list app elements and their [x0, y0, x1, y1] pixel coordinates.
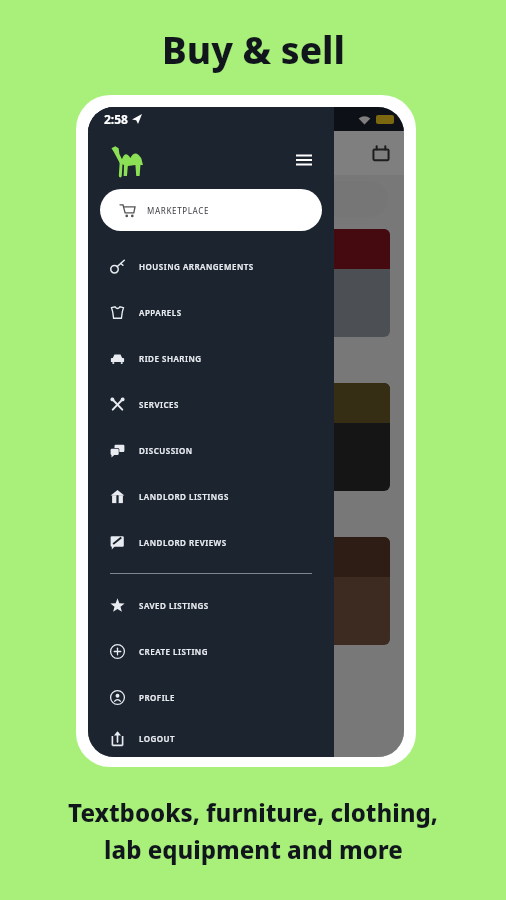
staticText: View more	[102, 359, 147, 371]
staticText: MARKETPLACE	[147, 205, 210, 216]
staticText: Furniture	[102, 496, 146, 510]
staticText: HOUSING ARRANGEMENTS	[139, 261, 254, 272]
staticText: Books	[102, 650, 131, 664]
staticText: LANDLORD REVIEWS	[139, 537, 227, 548]
staticText: SAVED LISTINGS	[139, 600, 209, 611]
button[interactable]: LOGOUT	[88, 720, 334, 757]
button[interactable]: MARKETPLACE	[100, 189, 322, 231]
staticText: LANDLORD LISTINGS	[139, 491, 229, 502]
button[interactable]: RIDE SHARING	[88, 335, 334, 381]
staticText: CREATE LISTING	[139, 646, 209, 657]
button[interactable]: PROFILE	[88, 674, 334, 720]
button[interactable]: LANDLORD REVIEWS	[88, 519, 334, 565]
staticText: RIDE SHARING	[139, 353, 202, 364]
staticText: lab equipment and more	[104, 833, 403, 866]
button[interactable]: SAVED LISTINGS	[88, 582, 334, 628]
staticText: LOGOUT	[139, 733, 176, 744]
staticText: DISCUSSION	[139, 445, 193, 456]
button[interactable]: APPARELS	[88, 289, 334, 335]
button[interactable]: LANDLORD LISTINGS	[88, 473, 334, 519]
button[interactable]: SERVICES	[88, 381, 334, 427]
staticText: 2:58	[104, 111, 128, 127]
button[interactable]: HOUSING ARRANGEMENTS	[88, 243, 334, 289]
staticText: Buy & sell	[162, 24, 345, 74]
button[interactable]: Menu	[288, 144, 320, 176]
staticText: APPARELS	[139, 307, 182, 318]
staticText: SERVICES	[139, 399, 179, 410]
button[interactable]: DISCUSSION	[88, 427, 334, 473]
staticText: PROFILE	[139, 692, 175, 703]
staticText: Apparels	[102, 342, 144, 356]
staticText: Textbooks, furniture, clothing,	[68, 796, 438, 829]
button[interactable]: CREATE LISTING	[88, 628, 334, 674]
